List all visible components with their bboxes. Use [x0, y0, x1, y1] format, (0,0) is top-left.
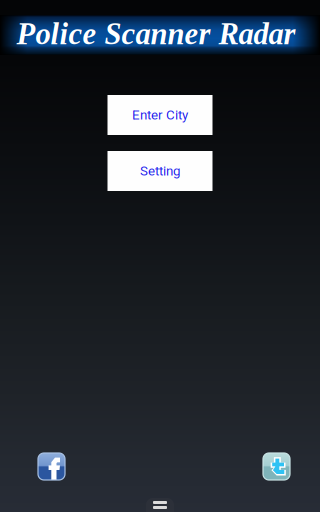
button[interactable]: Menu [146, 498, 174, 512]
staticText: Police Scanner Radar [16, 17, 295, 51]
staticText: Enter City [132, 107, 188, 123]
button[interactable]: Facebook [38, 453, 65, 480]
staticText: Setting [140, 163, 180, 179]
button[interactable]: Setting [107, 151, 212, 191]
button[interactable]: Enter City [107, 95, 212, 135]
button[interactable]: Twitter [263, 453, 290, 480]
